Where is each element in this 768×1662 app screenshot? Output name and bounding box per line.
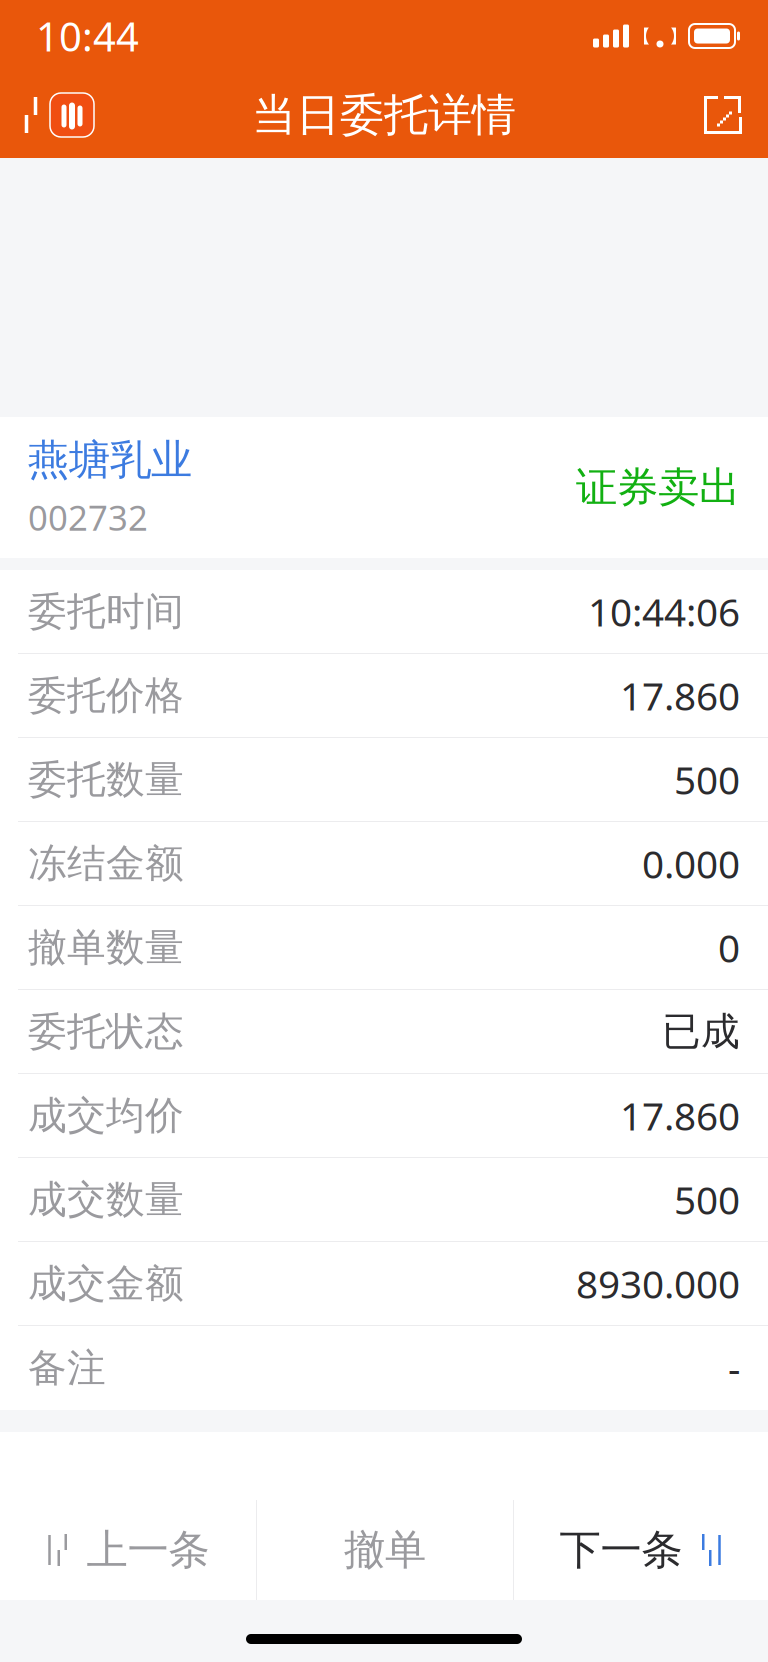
staticText: 委托价格 <box>28 672 184 719</box>
staticText: 上一条 <box>86 1525 209 1575</box>
staticText: 备注 <box>28 1344 106 1392</box>
staticText: 成交均价 <box>28 1092 184 1139</box>
staticText: 证券卖出 <box>576 462 740 513</box>
staticText: 冻结金额 <box>28 840 184 887</box>
staticText: 17.860 <box>620 1090 740 1141</box>
staticText: 撤单数量 <box>28 924 184 971</box>
staticText: 0.000 <box>642 838 740 889</box>
staticText: 0 <box>718 922 740 973</box>
staticText: 当日委托详情 <box>252 88 516 142</box>
staticText: 委托数量 <box>28 756 184 803</box>
staticText: 燕塘乳业 <box>28 435 192 485</box>
button[interactable]: 分享 <box>678 72 768 158</box>
staticText: 500 <box>674 754 740 805</box>
staticText: 10:44:06 <box>588 586 740 637</box>
staticText: 成交数量 <box>28 1176 184 1223</box>
staticText: 002732 <box>28 494 148 540</box>
staticText: 8930.000 <box>576 1258 740 1309</box>
button[interactable]: 上一条 <box>0 1500 256 1600</box>
staticText: 委托状态 <box>28 1008 184 1055</box>
staticText: 已成 <box>662 1008 740 1055</box>
staticText: 500 <box>674 1174 740 1225</box>
staticText: 17.860 <box>620 670 740 721</box>
staticText: - <box>728 1342 740 1394</box>
staticText: 撤单 <box>344 1525 426 1575</box>
staticText: 委托时间 <box>28 588 184 635</box>
staticText: 10:44 <box>36 9 139 62</box>
staticText: 下一条 <box>559 1525 682 1575</box>
button[interactable]: 返回 <box>0 72 108 158</box>
staticText: 成交金额 <box>28 1260 184 1307</box>
button[interactable]: 下一条 <box>514 1500 768 1600</box>
button[interactable]: 撤单 <box>257 1500 513 1600</box>
